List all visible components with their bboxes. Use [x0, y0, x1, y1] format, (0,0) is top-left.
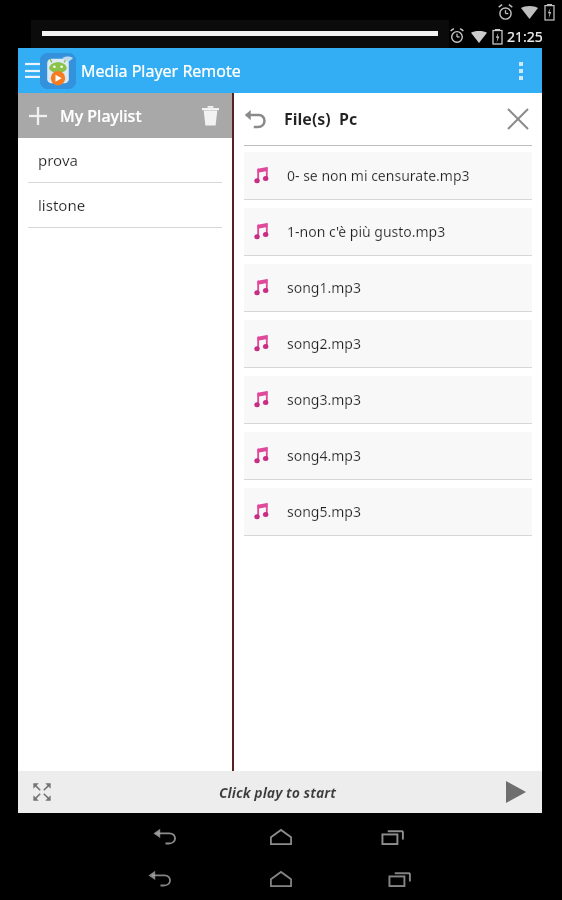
button[interactable]: prova	[18, 138, 232, 183]
button[interactable]: Back	[234, 93, 278, 145]
button[interactable]: Navigation menu	[18, 48, 48, 93]
button[interactable]: Add playlist	[18, 93, 58, 138]
staticText: song4.mp3	[287, 446, 361, 465]
button[interactable]: song5.mp3	[234, 488, 542, 544]
staticText: 1-non c'è più gusto.mp3	[287, 222, 446, 241]
button[interactable]: Fullscreen	[18, 771, 66, 813]
button[interactable]: Back	[144, 822, 186, 852]
staticText: song1.mp3	[287, 278, 361, 297]
button[interactable]: More options	[500, 48, 542, 93]
staticText: My Playlist	[60, 105, 142, 127]
button[interactable]: 1-non c'è più gusto.mp3	[234, 208, 542, 264]
button[interactable]: 0- se non mi censurate.mp3	[234, 152, 542, 208]
button[interactable]: Recent apps	[372, 822, 414, 852]
button[interactable]: Home	[260, 822, 302, 852]
staticText: 0- se non mi censurate.mp3	[287, 166, 470, 185]
button[interactable]: song4.mp3	[234, 432, 542, 488]
staticText: File(s) Pc	[284, 108, 358, 130]
button[interactable]: App icon	[38, 51, 78, 91]
button[interactable]: listone	[18, 183, 232, 228]
staticText: listone	[38, 195, 86, 215]
staticText: song5.mp3	[287, 502, 361, 521]
staticText: 21:25	[507, 27, 543, 46]
button[interactable]: Play	[490, 771, 542, 813]
staticText: Media Player Remote	[81, 60, 241, 82]
button[interactable]: Back	[139, 864, 181, 894]
staticText: Click play to start	[219, 783, 336, 802]
staticText: song3.mp3	[287, 390, 361, 409]
staticText: song2.mp3	[287, 334, 361, 353]
button[interactable]: Recent apps	[379, 864, 421, 894]
button[interactable]: Close	[494, 93, 542, 145]
button[interactable]: Delete playlist	[188, 93, 232, 138]
button[interactable]: Home	[260, 864, 302, 894]
button[interactable]: song3.mp3	[234, 376, 542, 432]
staticText: prova	[38, 150, 78, 170]
button[interactable]: song2.mp3	[234, 320, 542, 376]
button[interactable]: song1.mp3	[234, 264, 542, 320]
